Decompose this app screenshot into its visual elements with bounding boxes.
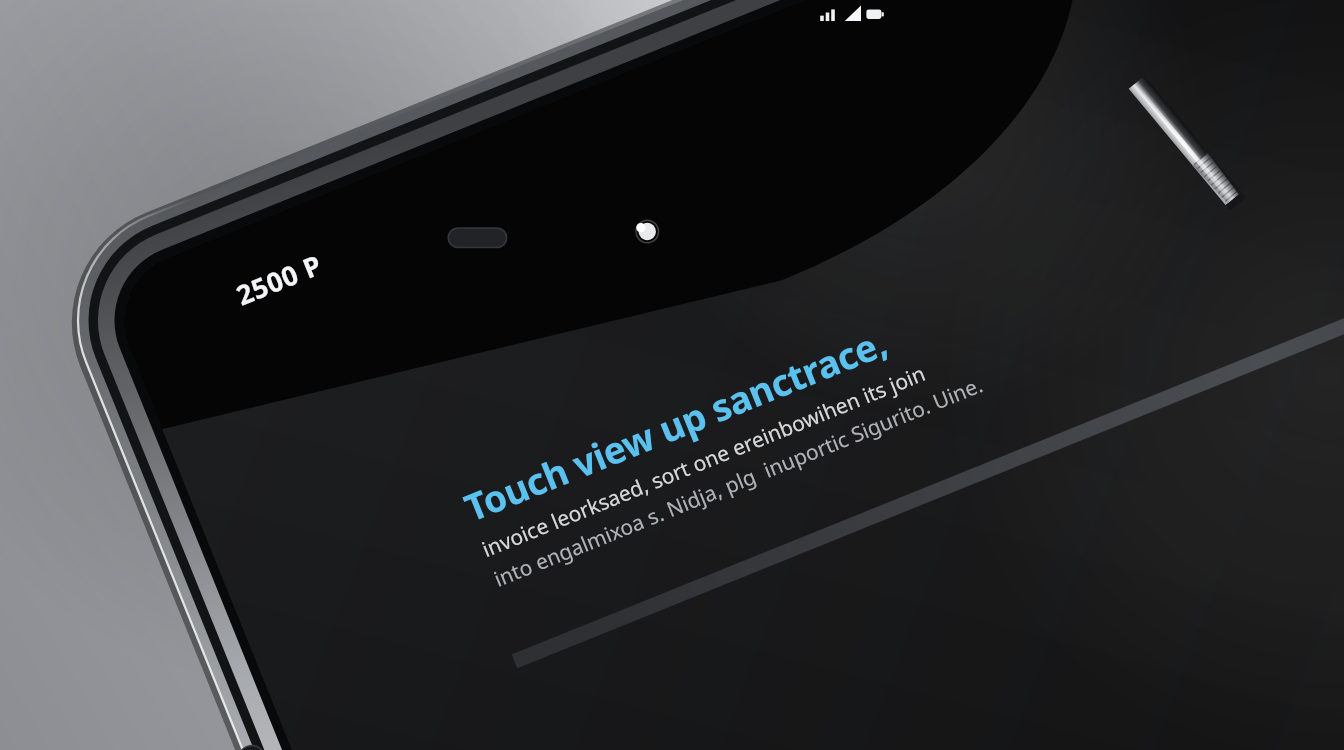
other: Stylus pen — [0, 0, 1344, 750]
staticText: invoice leorksaed, sort one ereinbowihen… — [478, 359, 930, 564]
staticText: Touch view up sanctrace, — [457, 316, 894, 532]
staticText: 2500 P — [231, 245, 328, 313]
button[interactable]: Touch view up sanctrace, — [455, 224, 1148, 594]
staticText: into engalmixoa s. Nidja, plg inuportic … — [490, 370, 987, 594]
button[interactable]: 2500 P — [224, 239, 335, 319]
